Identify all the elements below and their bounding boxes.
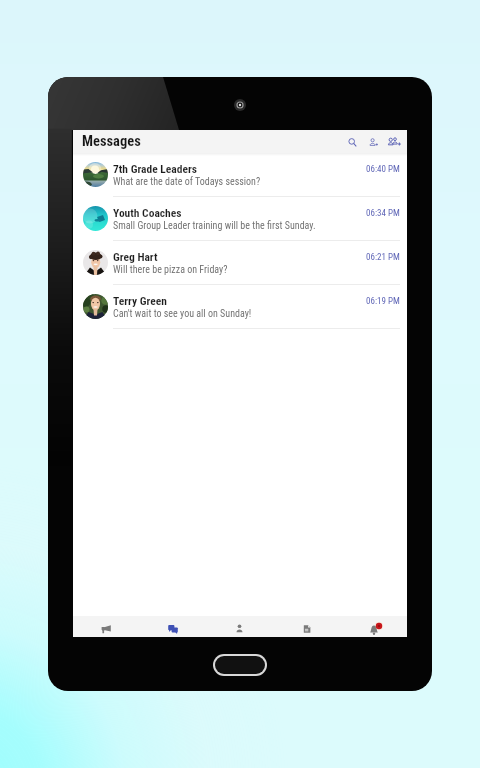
button[interactable]: Greg Hart [73, 241, 407, 285]
staticText: 06:34 PM [366, 208, 400, 219]
button[interactable]: Search [342, 132, 363, 153]
staticText: 7th Grade Leaders [113, 162, 366, 175]
staticText: Terry Green [113, 294, 366, 307]
button[interactable]: Add group [384, 132, 405, 153]
staticText: Small Group Leader training will be the … [113, 220, 316, 232]
staticText: Will there be pizza on Friday? [113, 264, 228, 276]
button[interactable]: Youth Coaches [73, 197, 407, 241]
button[interactable]: Terry Green [73, 285, 407, 329]
staticText: What are the date of Todays session? [113, 176, 261, 188]
button[interactable]: Files [273, 616, 340, 637]
button[interactable]: Home [213, 654, 267, 676]
button[interactable]: Announcements [73, 616, 139, 637]
staticText: Youth Coaches [113, 206, 366, 219]
staticText: 06:19 PM [366, 296, 400, 307]
staticText: Can't wait to see you all on Sunday! [113, 308, 252, 320]
staticText: 06:40 PM [366, 164, 400, 175]
button[interactable]: Notifications [340, 616, 407, 637]
button[interactable]: 7th Grade Leaders [73, 153, 407, 197]
staticText: 06:21 PM [366, 252, 400, 263]
staticText: Messages [82, 133, 141, 150]
button[interactable]: People [206, 616, 273, 637]
button[interactable]: Add person [363, 132, 384, 153]
staticText: Greg Hart [113, 250, 366, 263]
button[interactable]: Messages [139, 616, 206, 637]
